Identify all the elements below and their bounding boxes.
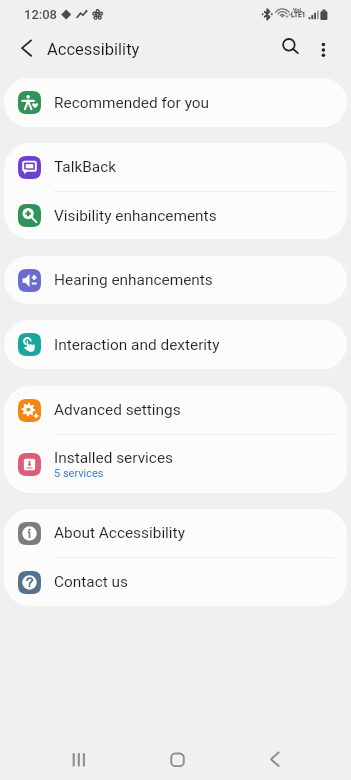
button[interactable]: About Accessibility — [4, 509, 347, 557]
button[interactable]: Hearing enhancements — [4, 256, 347, 304]
button[interactable]: Navigate up — [6, 32, 44, 70]
button[interactable]: More options — [310, 36, 340, 66]
button[interactable]: Contact us — [4, 558, 347, 606]
staticText: Advanced settings — [54, 401, 181, 419]
staticText: Visibility enhancements — [54, 207, 217, 225]
button[interactable]: Advanced settings — [4, 386, 347, 434]
staticText: 12:08 — [24, 7, 58, 22]
staticText: 5 services — [54, 467, 104, 480]
button[interactable]: Installed services — [4, 435, 347, 493]
button[interactable]: Back — [259, 744, 291, 776]
staticText: Hearing enhancements — [54, 271, 213, 289]
button[interactable]: TalkBack — [4, 143, 347, 191]
staticText: Accessibility — [47, 40, 140, 59]
staticText: Recommended for you — [54, 94, 210, 112]
button[interactable]: Recommended for you — [4, 78, 347, 127]
staticText: Contact us — [54, 573, 129, 591]
staticText: Installed services — [54, 449, 173, 467]
staticText: LTE1 — [291, 11, 306, 19]
button[interactable]: Search — [272, 34, 306, 68]
staticText: Interaction and dexterity — [54, 336, 220, 354]
staticText: About Accessibility — [54, 524, 185, 542]
button[interactable]: Interaction and dexterity — [4, 320, 347, 369]
button[interactable]: Home — [161, 744, 193, 776]
button[interactable]: Visibility enhancements — [4, 192, 347, 239]
button[interactable]: Recent apps — [63, 744, 95, 776]
staticText: VoL — [293, 7, 303, 13]
staticText: TalkBack — [54, 158, 117, 176]
